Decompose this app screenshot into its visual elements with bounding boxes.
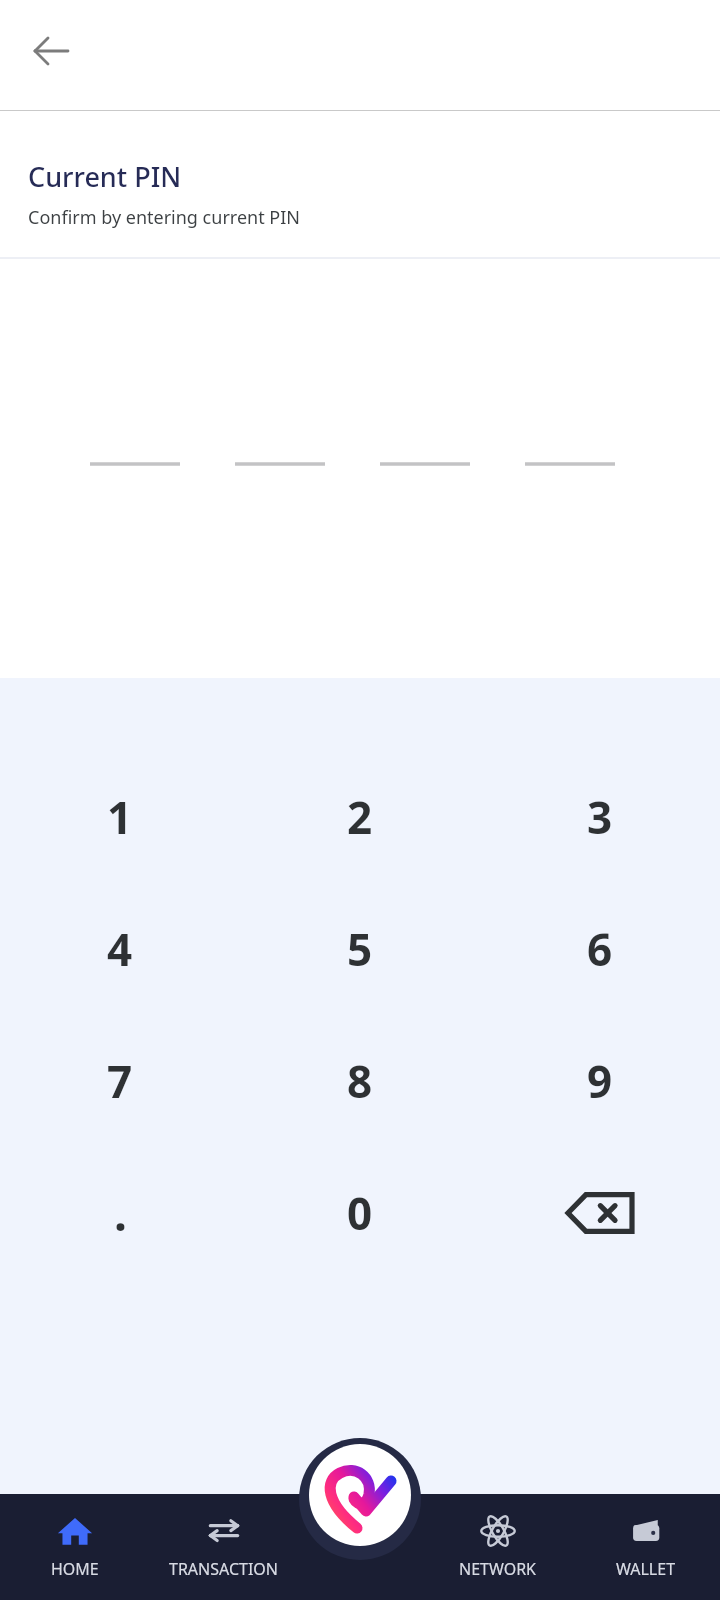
- staticText: Confirm by entering current PIN: [28, 205, 301, 230]
- button[interactable]: Back: [12, 13, 88, 89]
- button[interactable]: 4: [0, 906, 240, 992]
- button[interactable]: 9: [480, 1038, 720, 1124]
- button[interactable]: Backspace: [480, 1170, 720, 1256]
- staticText: .: [114, 1182, 127, 1245]
- staticText: 4: [107, 919, 133, 979]
- staticText: 7: [107, 1051, 133, 1111]
- button[interactable]: NETWORK: [424, 1494, 572, 1600]
- button[interactable]: 0: [240, 1170, 480, 1256]
- staticText: 9: [587, 1051, 613, 1111]
- button[interactable]: HOME: [0, 1494, 149, 1600]
- staticText: 3: [587, 787, 613, 847]
- staticText: 8: [347, 1051, 373, 1111]
- button[interactable]: Scan: [295, 1430, 425, 1560]
- button[interactable]: 1: [0, 774, 240, 860]
- button[interactable]: WALLET: [572, 1494, 720, 1600]
- staticText: 5: [347, 919, 373, 979]
- button[interactable]: .: [0, 1170, 240, 1256]
- staticText: TRANSACTION: [169, 1558, 279, 1580]
- button[interactable]: TRANSACTION: [149, 1494, 298, 1600]
- staticText: WALLET: [616, 1558, 676, 1580]
- staticText: 6: [587, 919, 613, 979]
- button[interactable]: 6: [480, 906, 720, 992]
- staticText: Current PIN: [28, 158, 182, 195]
- staticText: 0: [347, 1183, 373, 1243]
- staticText: 1: [107, 787, 133, 847]
- button[interactable]: 3: [480, 774, 720, 860]
- button[interactable]: 8: [240, 1038, 480, 1124]
- staticText: 2: [347, 787, 373, 847]
- button[interactable]: 7: [0, 1038, 240, 1124]
- button[interactable]: 2: [240, 774, 480, 860]
- button[interactable]: 5: [240, 906, 480, 992]
- staticText: NETWORK: [459, 1558, 537, 1580]
- staticText: HOME: [51, 1558, 99, 1580]
